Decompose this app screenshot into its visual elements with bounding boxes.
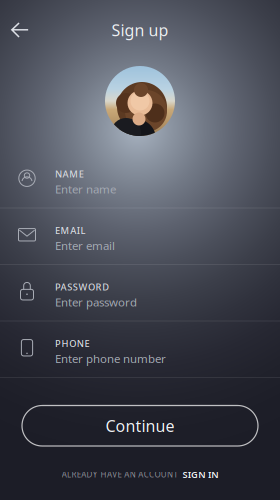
button[interactable]: Continue [22, 405, 258, 446]
staticText: Continue [105, 415, 174, 436]
staticText: Enter name [55, 181, 116, 197]
staticText: Enter phone number [55, 351, 166, 366]
button[interactable]: NAME [0, 152, 280, 208]
staticText: PHONE [55, 337, 89, 350]
staticText: EMAIL [55, 224, 85, 237]
button[interactable]: Back [0, 11, 40, 49]
button[interactable]: PASSWORD [0, 265, 280, 321]
staticText: Sign up [111, 19, 168, 41]
staticText: PASSWORD [55, 281, 109, 293]
button[interactable]: PHONE [0, 321, 280, 378]
button[interactable]: EMAIL [0, 208, 280, 265]
staticText: Enter email [55, 238, 115, 253]
staticText: Enter password [55, 294, 137, 310]
staticText: SIGN IN [182, 468, 218, 481]
button[interactable]: SIGN IN [182, 468, 218, 481]
staticText: NAME [55, 168, 84, 180]
staticText: ALREADY HAVE AN ACCOUNT [62, 469, 177, 480]
